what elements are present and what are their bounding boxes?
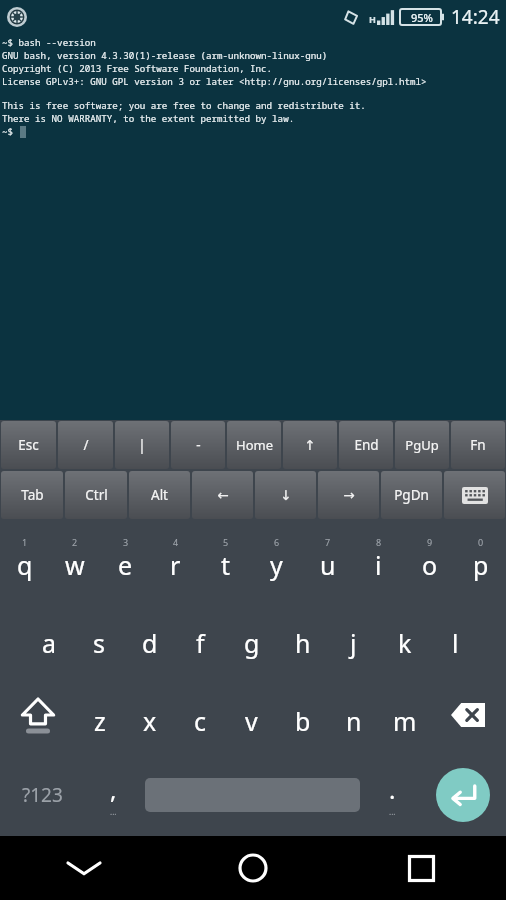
staticText: This is free software; you are free to c… — [2, 99, 366, 112]
staticText: ~$ bash --version — [2, 36, 96, 49]
button[interactable]: Tab — [1, 471, 63, 519]
button[interactable]: 8 — [353, 520, 404, 598]
staticText: y — [270, 548, 283, 582]
button[interactable]: a — [24, 598, 74, 676]
button[interactable]: j — [328, 598, 379, 676]
staticText: / — [83, 436, 89, 454]
button[interactable]: | — [115, 421, 169, 469]
button[interactable]: 6 — [251, 520, 302, 598]
button[interactable]: l — [430, 598, 481, 676]
staticText: 5 — [223, 536, 229, 548]
button[interactable]: Hide keyboard — [0, 836, 168, 900]
staticText: There is NO WARRANTY, to the extent perm… — [2, 112, 295, 125]
button[interactable]: , — [85, 754, 141, 836]
button[interactable]: s — [74, 598, 124, 676]
staticText: 1 — [22, 536, 28, 548]
button[interactable]: n — [328, 676, 379, 754]
button[interactable]: ↓ — [255, 471, 316, 519]
staticText: c — [194, 704, 207, 738]
staticText: m — [393, 704, 417, 738]
staticText: u — [320, 548, 336, 582]
button[interactable]: PgDn — [381, 471, 442, 519]
button[interactable]: ← — [192, 471, 253, 519]
staticText: | — [138, 436, 146, 454]
button[interactable]: c — [175, 676, 226, 754]
button[interactable]: 9 — [404, 520, 455, 598]
button[interactable]: . — [364, 754, 420, 836]
button[interactable]: 7 — [302, 520, 353, 598]
button[interactable]: k — [379, 598, 430, 676]
button[interactable]: 4 — [150, 520, 200, 598]
button[interactable]: End — [339, 421, 393, 469]
button[interactable]: Backspace — [430, 676, 506, 754]
button[interactable]: g — [226, 598, 277, 676]
staticText: GNU bash, version 4.3.30(1)-release (arm… — [2, 49, 328, 62]
staticText: ?123 — [22, 782, 63, 808]
staticText: ~$ — [2, 125, 19, 138]
staticText: ↓ — [280, 487, 292, 503]
staticText: 7 — [325, 536, 331, 548]
button[interactable]: - — [171, 421, 225, 469]
button[interactable]: / — [58, 421, 113, 469]
button[interactable]: h — [277, 598, 328, 676]
button[interactable]: 5 — [200, 520, 251, 598]
staticText: End — [354, 436, 379, 454]
staticText: e — [118, 548, 133, 582]
button[interactable]: Shift — [0, 676, 75, 754]
staticText: 95% — [411, 10, 433, 25]
staticText: x — [143, 704, 157, 738]
button[interactable]: z — [75, 676, 125, 754]
button[interactable]: Esc — [1, 421, 56, 469]
staticText: b — [295, 704, 311, 738]
staticText: a — [42, 626, 57, 660]
button[interactable]: Recent apps — [337, 836, 506, 900]
button[interactable]: Ctrl — [65, 471, 127, 519]
staticText: f — [196, 626, 205, 660]
staticText: 8 — [376, 536, 382, 548]
staticText: p — [473, 548, 489, 582]
staticText: → — [343, 487, 355, 503]
button[interactable]: Alt — [129, 471, 190, 519]
staticText: 9 — [427, 536, 433, 548]
button[interactable]: 1 — [0, 520, 50, 598]
staticText: Fn — [470, 436, 486, 454]
staticText: q — [17, 548, 33, 582]
button[interactable]: v — [226, 676, 277, 754]
staticText: Home — [236, 436, 273, 454]
staticText: Alt — [151, 486, 168, 504]
staticText: g — [244, 626, 260, 660]
button[interactable]: m — [379, 676, 430, 754]
staticText: ↑ — [304, 437, 316, 453]
button[interactable]: Enter — [436, 768, 490, 822]
button[interactable]: ?123 — [0, 754, 85, 836]
button[interactable]: 0 — [455, 520, 506, 598]
button[interactable]: → — [318, 471, 379, 519]
staticText: PgUp — [405, 436, 439, 454]
staticText: . — [389, 773, 396, 806]
button[interactable]: ↑ — [283, 421, 337, 469]
button[interactable]: PgUp — [395, 421, 449, 469]
staticText: h — [295, 626, 311, 660]
staticText: Esc — [18, 436, 39, 454]
button[interactable]: 2 — [50, 520, 100, 598]
staticText: o — [422, 548, 438, 582]
button[interactable]: Home — [227, 421, 281, 469]
button[interactable]: Fn — [451, 421, 505, 469]
button[interactable]: Home — [168, 836, 337, 900]
staticText: 3 — [123, 536, 129, 548]
staticText: k — [398, 626, 412, 660]
staticText: j — [350, 626, 357, 660]
button[interactable]: x — [125, 676, 175, 754]
staticText: r — [170, 548, 181, 582]
staticText: 2 — [72, 536, 78, 548]
button[interactable]: b — [277, 676, 328, 754]
button[interactable]: 3 — [100, 520, 150, 598]
staticText: n — [346, 704, 362, 738]
staticText: d — [142, 626, 158, 660]
button[interactable]: d — [124, 598, 175, 676]
button[interactable]: f — [175, 598, 226, 676]
staticText: Tab — [21, 486, 44, 504]
staticText: t — [221, 548, 231, 582]
button[interactable]: Switch keyboard — [444, 471, 505, 519]
